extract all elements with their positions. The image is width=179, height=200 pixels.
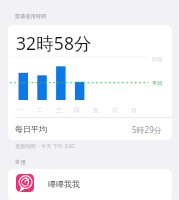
staticText: 六 bbox=[112, 107, 118, 114]
staticText: 嗶嗶我我 bbox=[48, 179, 80, 189]
staticText: 一 bbox=[18, 107, 24, 114]
staticText: 限額 bbox=[152, 56, 163, 63]
button[interactable]: 32時58分 bbox=[8, 25, 172, 140]
staticText: 平均 bbox=[152, 80, 163, 87]
staticText: 螢幕使用時間 bbox=[15, 13, 47, 20]
staticText: 常用 bbox=[15, 159, 26, 166]
staticText: 五 bbox=[93, 107, 99, 114]
staticText: 二 bbox=[37, 107, 43, 114]
staticText: 5時29分 bbox=[132, 124, 162, 135]
staticText: 更新時間：今天 下午 2:02 bbox=[15, 142, 75, 149]
staticText: 日 bbox=[131, 107, 137, 114]
button[interactable]: 嗶嗶我我 bbox=[8, 169, 172, 200]
staticText: 四 bbox=[74, 107, 80, 114]
staticText: 每日平均 bbox=[15, 124, 47, 134]
staticText: 三 bbox=[56, 107, 62, 114]
staticText: 32時58分 bbox=[16, 31, 92, 55]
